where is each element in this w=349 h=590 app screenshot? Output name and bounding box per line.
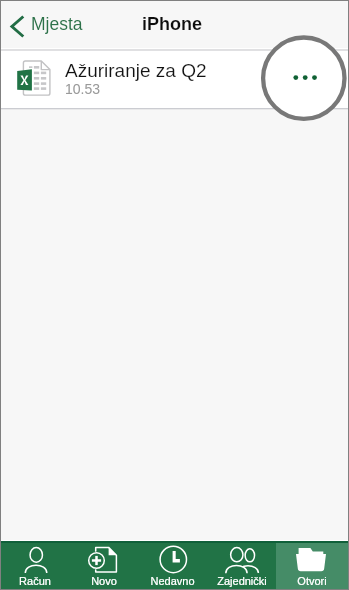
staticText: Nedavno bbox=[150, 575, 195, 587]
staticText: Otvori bbox=[297, 575, 327, 587]
button[interactable]: More options bbox=[280, 51, 348, 108]
staticText: iPhone bbox=[142, 14, 203, 34]
button[interactable]: Open bbox=[276, 543, 348, 589]
staticText: Zajednički bbox=[217, 575, 267, 587]
button[interactable]: Ažuriranje za Q2 bbox=[1, 51, 348, 108]
button[interactable]: Account bbox=[1, 543, 69, 589]
button[interactable]: Shared bbox=[207, 543, 276, 589]
button[interactable]: Recent bbox=[138, 543, 207, 589]
staticText: Račun bbox=[19, 575, 51, 587]
staticText: Ažuriranje za Q2 bbox=[65, 60, 207, 81]
button[interactable]: New bbox=[69, 543, 138, 589]
staticText: Novo bbox=[91, 575, 117, 587]
staticText: Mjesta bbox=[31, 14, 83, 34]
staticText: 10.53 bbox=[65, 81, 101, 97]
button[interactable]: Mjesta bbox=[1, 1, 89, 48]
